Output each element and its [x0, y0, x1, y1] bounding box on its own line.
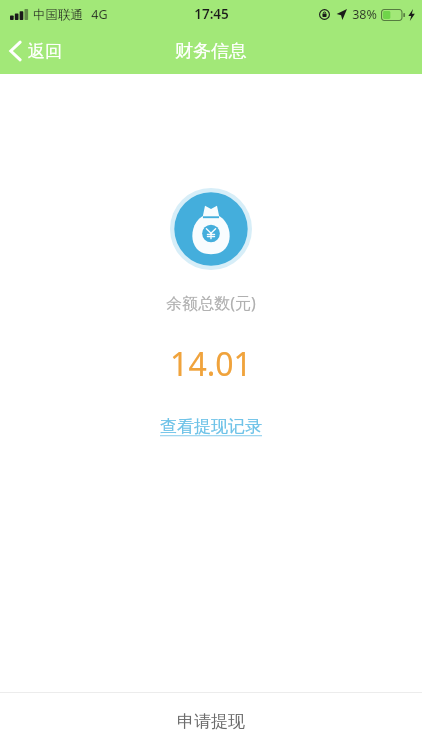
button[interactable]: 返回: [0, 28, 76, 74]
staticText: 38%: [352, 6, 377, 23]
staticText: 查看提现记录: [160, 416, 262, 437]
staticText: 返回: [28, 41, 62, 62]
staticText: 余额总数(元): [166, 292, 256, 314]
staticText: 4G: [91, 6, 108, 23]
button[interactable]: 申请提现: [0, 693, 422, 750]
staticText: 申请提现: [177, 711, 245, 732]
staticText: 财务信息: [175, 40, 247, 63]
button[interactable]: 查看提现记录: [148, 412, 274, 441]
staticText: 中国联通: [33, 7, 83, 23]
staticText: 14.01: [170, 342, 252, 386]
staticText: 17:45: [194, 5, 229, 23]
